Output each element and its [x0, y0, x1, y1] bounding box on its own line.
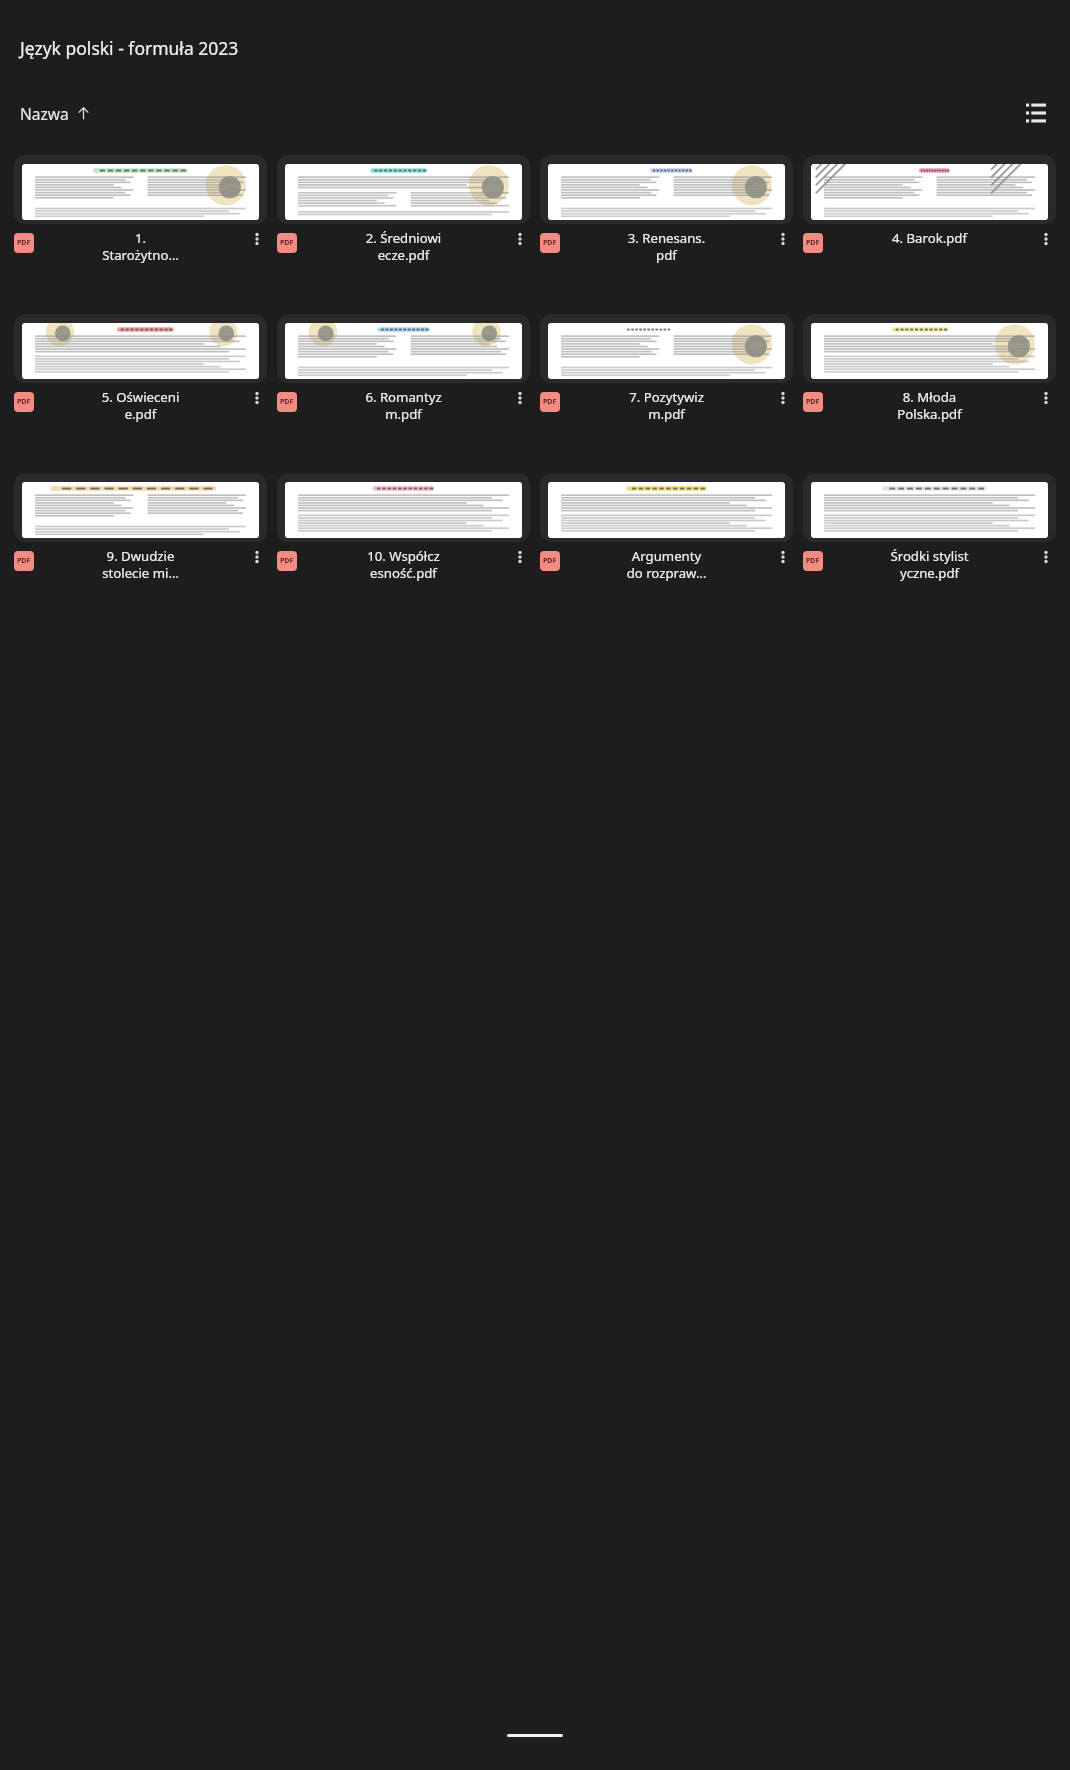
- staticText: PDF: [806, 397, 820, 407]
- button[interactable]: More options: [1036, 547, 1056, 567]
- staticText: 8. Młoda Polska.pdf: [824, 388, 1035, 423]
- staticText: 9. Dwudzie stolecie mi…: [35, 547, 246, 582]
- button[interactable]: PDF: [277, 155, 530, 283]
- button[interactable]: More options: [510, 388, 530, 408]
- button[interactable]: More options: [247, 229, 267, 249]
- button[interactable]: Switch to list view: [1016, 93, 1056, 133]
- button[interactable]: PDF: [540, 473, 793, 601]
- button[interactable]: Nazwa: [14, 99, 97, 128]
- button[interactable]: More options: [773, 547, 793, 567]
- button[interactable]: PDF: [14, 155, 267, 283]
- staticText: Język polski - formuła 2023: [20, 36, 239, 60]
- staticText: PDF: [543, 238, 557, 248]
- button[interactable]: More options: [247, 547, 267, 567]
- staticText: 7. Pozytywiz m.pdf: [561, 388, 772, 423]
- staticText: PDF: [806, 238, 820, 248]
- staticText: Argumenty do rozpraw…: [561, 547, 772, 582]
- button[interactable]: PDF: [14, 314, 267, 442]
- staticText: PDF: [17, 397, 31, 407]
- button[interactable]: More options: [773, 229, 793, 249]
- staticText: 2. Średniowi ecze.pdf: [298, 229, 509, 264]
- button[interactable]: PDF: [277, 473, 530, 601]
- staticText: 6. Romantyz m.pdf: [298, 388, 509, 423]
- staticText: 10. Współcz esność.pdf: [298, 547, 509, 582]
- staticText: PDF: [806, 556, 820, 566]
- staticText: 3. Renesans. pdf: [561, 229, 772, 264]
- staticText: Środki stylist yczne.pdf: [824, 547, 1035, 582]
- staticText: 4. Barok.pdf: [824, 229, 1035, 247]
- staticText: Nazwa: [20, 103, 69, 124]
- button[interactable]: PDF: [14, 473, 267, 601]
- button[interactable]: PDF: [540, 155, 793, 283]
- button[interactable]: More options: [773, 388, 793, 408]
- button[interactable]: PDF: [277, 314, 530, 442]
- button[interactable]: PDF: [803, 314, 1056, 442]
- button[interactable]: More options: [1036, 388, 1056, 408]
- staticText: PDF: [280, 238, 294, 248]
- button[interactable]: PDF: [540, 314, 793, 442]
- staticText: PDF: [280, 397, 294, 407]
- staticText: PDF: [543, 397, 557, 407]
- staticText: PDF: [17, 238, 31, 248]
- staticText: 1. Starożytno…: [35, 229, 246, 264]
- staticText: PDF: [17, 556, 31, 566]
- button[interactable]: PDF: [803, 155, 1056, 283]
- staticText: PDF: [280, 556, 294, 566]
- button[interactable]: More options: [1036, 229, 1056, 249]
- staticText: 5. Oświeceni e.pdf: [35, 388, 246, 423]
- button[interactable]: More options: [510, 547, 530, 567]
- button[interactable]: More options: [510, 229, 530, 249]
- staticText: PDF: [543, 556, 557, 566]
- button[interactable]: More options: [247, 388, 267, 408]
- button[interactable]: PDF: [803, 473, 1056, 601]
